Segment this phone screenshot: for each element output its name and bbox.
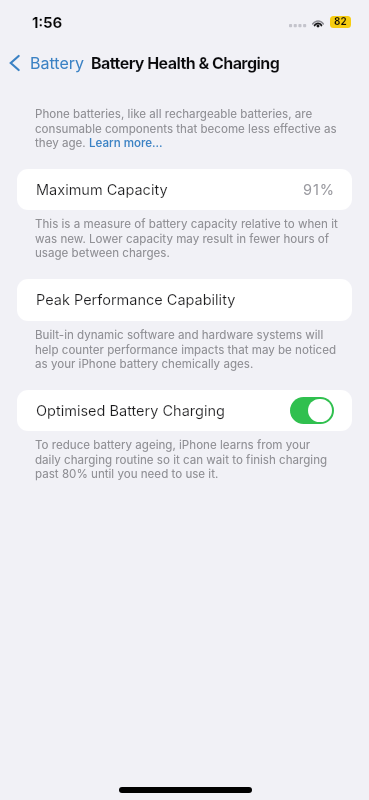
staticText: 1:56 bbox=[32, 13, 63, 31]
staticText: Built-in dynamic software and hardware s… bbox=[35, 328, 338, 370]
staticText: 91% bbox=[303, 181, 335, 199]
staticText: 82 bbox=[334, 16, 347, 28]
button[interactable]: Peak Performance Capability bbox=[17, 279, 352, 321]
staticText: Peak Performance Capability bbox=[36, 291, 236, 309]
staticText: This is a measure of battery capacity re… bbox=[35, 217, 338, 259]
button[interactable]: Optimised Battery Charging bbox=[17, 390, 352, 431]
staticText: Battery Health & Charging bbox=[91, 53, 280, 72]
button[interactable]: Back to Battery bbox=[9, 45, 84, 80]
staticText: Phone batteries, like all rechargeable b… bbox=[35, 107, 338, 149]
button[interactable]: Learn more about battery health bbox=[89, 136, 163, 150]
button[interactable]: Optimised Battery Charging toggle bbox=[290, 397, 334, 424]
staticText: To reduce battery ageing, iPhone learns … bbox=[35, 438, 338, 480]
button[interactable]: Maximum Capacity bbox=[17, 169, 352, 210]
staticText: Optimised Battery Charging bbox=[36, 402, 225, 420]
staticText: Battery bbox=[30, 53, 84, 72]
staticText: Maximum Capacity bbox=[36, 181, 168, 199]
